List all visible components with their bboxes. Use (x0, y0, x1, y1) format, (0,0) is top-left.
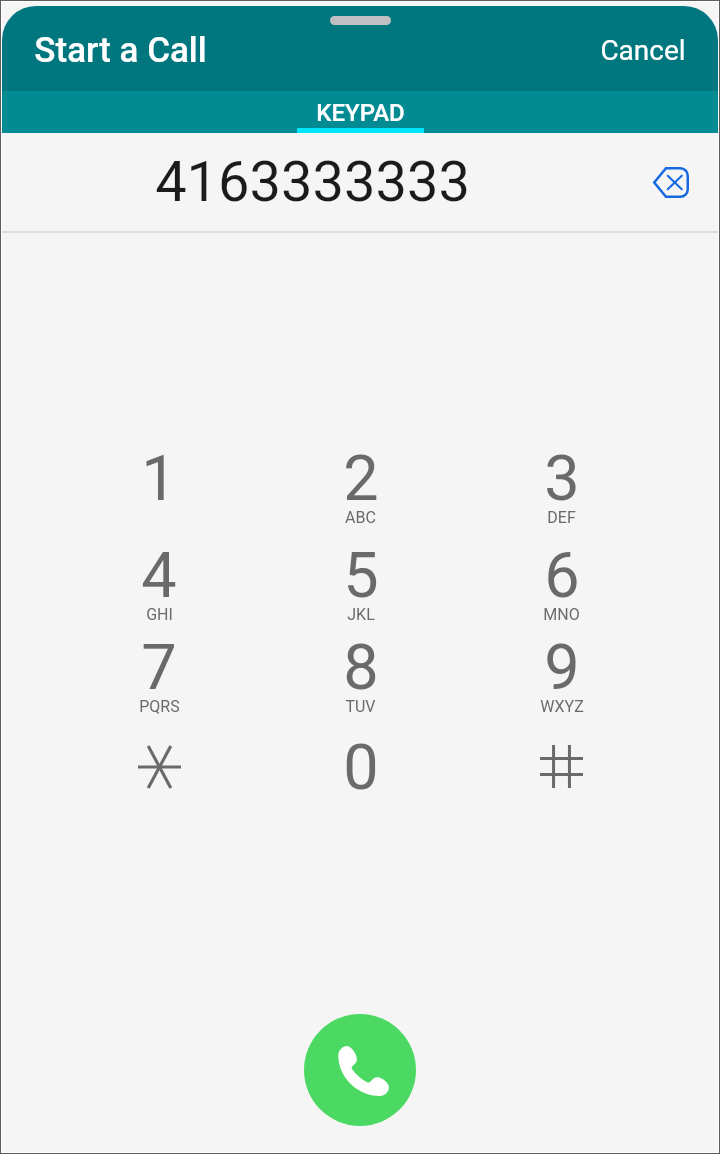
staticText: TUV (345, 697, 376, 716)
staticText: WXYZ (540, 697, 584, 716)
staticText: DEF (547, 508, 576, 527)
button[interactable]: 1 (58, 446, 260, 542)
staticText: MNO (543, 605, 580, 624)
staticText: 6 (544, 539, 580, 613)
button[interactable]: 2 (260, 446, 461, 542)
button[interactable]: 6 (461, 543, 662, 639)
staticText: KEYPAD (316, 99, 405, 127)
staticText: 9 (544, 631, 580, 705)
staticText: Cancel (600, 34, 686, 67)
staticText: 1 (141, 442, 177, 516)
staticText: 2 (343, 442, 379, 516)
button[interactable]: 5 (260, 543, 461, 639)
button[interactable]: 4 (58, 543, 260, 639)
staticText: Start a Call (34, 30, 207, 71)
staticText: 4 (141, 539, 177, 613)
button[interactable]: Start a Call (34, 30, 207, 71)
staticText: JKL (347, 605, 375, 624)
staticText: 4163333333 (155, 149, 470, 215)
staticText: ABC (345, 508, 376, 527)
button[interactable]: Star (58, 735, 260, 831)
staticText: 7 (141, 631, 177, 705)
button[interactable]: 7 (58, 635, 260, 731)
staticText: 5 (343, 539, 379, 613)
staticText: 8 (343, 631, 379, 705)
button[interactable]: 9 (461, 635, 662, 731)
staticText: 3 (544, 442, 580, 516)
button[interactable]: Backspace (639, 150, 703, 214)
button[interactable]: Cancel (600, 34, 686, 67)
staticText: GHI (146, 605, 173, 624)
button[interactable]: 3 (461, 446, 662, 542)
button[interactable]: 0 (260, 735, 461, 831)
staticText: 0 (343, 731, 379, 805)
button[interactable]: 8 (260, 635, 461, 731)
button[interactable]: KEYPAD (2, 91, 718, 133)
staticText: PQRS (139, 697, 180, 716)
button[interactable]: Pound (461, 735, 662, 831)
button[interactable]: Call (304, 1014, 416, 1126)
